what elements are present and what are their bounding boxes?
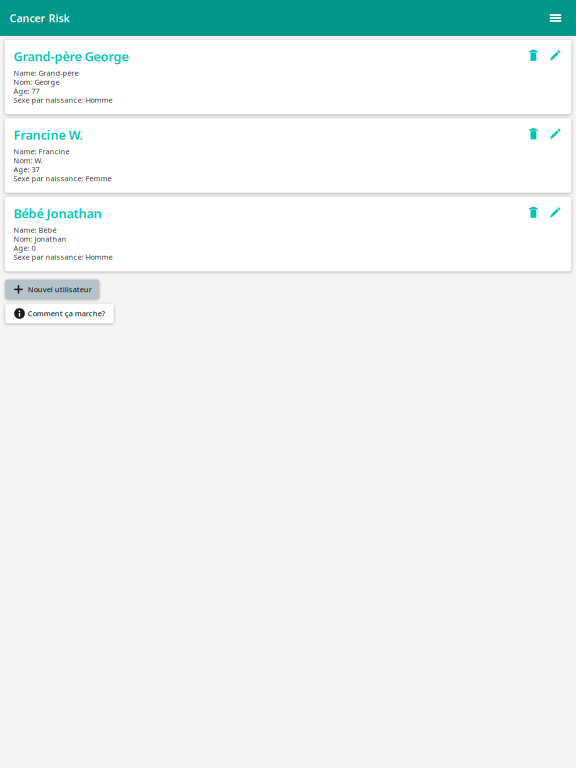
staticText: Name: Grand-père bbox=[13, 68, 78, 78]
button[interactable]: Modifier bbox=[544, 123, 566, 145]
staticText: Sexe par naissance: Homme bbox=[13, 252, 112, 262]
staticText: Nom: George bbox=[13, 77, 59, 87]
staticText: Nom: Jonathan bbox=[13, 234, 66, 244]
staticText: Sexe par naissance: Homme bbox=[13, 95, 112, 105]
staticText: Age: 0 bbox=[13, 243, 35, 253]
staticText: Grand-père George bbox=[13, 48, 128, 65]
staticText: Nom: W. bbox=[13, 155, 42, 165]
staticText: Age: 37 bbox=[13, 164, 39, 174]
staticText: Comment ça marche? bbox=[28, 308, 105, 318]
button[interactable]: Modifier bbox=[544, 44, 566, 66]
staticText: Age: 77 bbox=[13, 86, 39, 96]
staticText: Bébé Jonathan bbox=[13, 205, 101, 222]
staticText: Sexe par naissance: Femme bbox=[13, 173, 111, 183]
staticText: Name: Bébé bbox=[13, 225, 56, 235]
staticText: Nouvel utilisateur bbox=[28, 284, 92, 294]
button[interactable]: Menu bbox=[542, 5, 568, 31]
button[interactable]: Supprimer bbox=[522, 44, 544, 66]
button[interactable]: Nouvel utilisateur bbox=[5, 279, 99, 299]
staticText: Cancer Risk bbox=[9, 11, 69, 25]
staticText: Name: Francine bbox=[13, 146, 69, 156]
staticText: Francine W. bbox=[13, 126, 82, 144]
button[interactable]: Supprimer bbox=[522, 201, 544, 223]
button[interactable]: Comment ça marche? bbox=[5, 304, 114, 323]
button[interactable]: Modifier bbox=[544, 201, 566, 223]
button[interactable]: Supprimer bbox=[522, 123, 544, 145]
